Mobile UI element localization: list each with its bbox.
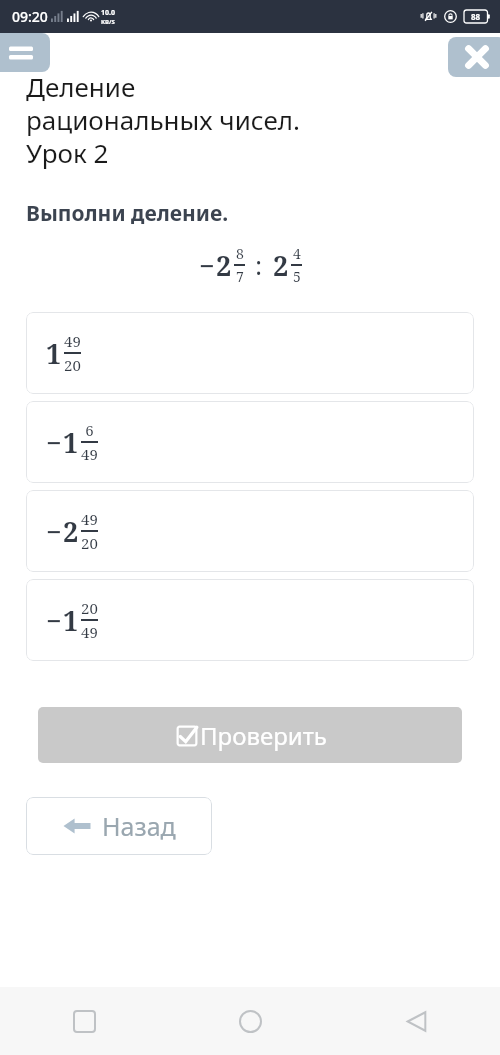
button[interactable]: 1 [26,312,474,394]
staticText: 10.0 [101,8,115,18]
button[interactable]: Назад [26,797,212,855]
staticText: 20 [81,598,98,618]
staticText: : [255,248,263,282]
button[interactable]: Close [448,37,500,77]
staticText: 5 [293,267,301,286]
staticText: 49 [81,444,98,464]
staticText: 2 [63,513,79,550]
button[interactable]: Back [392,997,440,1045]
staticText: − [199,247,215,284]
staticText: 1 [63,424,79,461]
staticText: − [46,513,62,550]
staticText: 6 [85,420,94,440]
button[interactable]: Home [226,997,274,1045]
staticText: 7 [236,267,244,286]
button[interactable]: − [26,401,474,483]
staticText: − [46,602,62,639]
staticText: 09:20 [12,7,48,26]
button[interactable]: Menu [0,33,50,72]
staticText: 2 [216,247,232,284]
button[interactable]: − [26,579,474,661]
staticText: Деление рациональных чисел. Урок 2 [26,69,300,171]
button[interactable]: − [26,490,474,572]
staticText: 49 [64,331,81,351]
staticText: 20 [64,355,81,375]
staticText: 49 [81,622,98,642]
staticText: Выполни деление. [26,199,229,228]
staticText: 8 [236,244,244,263]
staticText: KB/S [101,18,115,26]
button[interactable]: Проверить [38,707,462,763]
staticText: 4 [293,244,301,263]
staticText: 49 [81,509,98,529]
staticText: − [46,424,62,461]
staticText: 1 [46,335,62,372]
staticText: 1 [63,602,79,639]
staticText: 88 [471,11,481,22]
staticText: Проверить [200,719,327,752]
staticText: 20 [81,533,98,553]
button[interactable]: Recents [60,997,108,1045]
staticText: 2 [273,247,289,284]
staticText: Назад [102,809,176,843]
